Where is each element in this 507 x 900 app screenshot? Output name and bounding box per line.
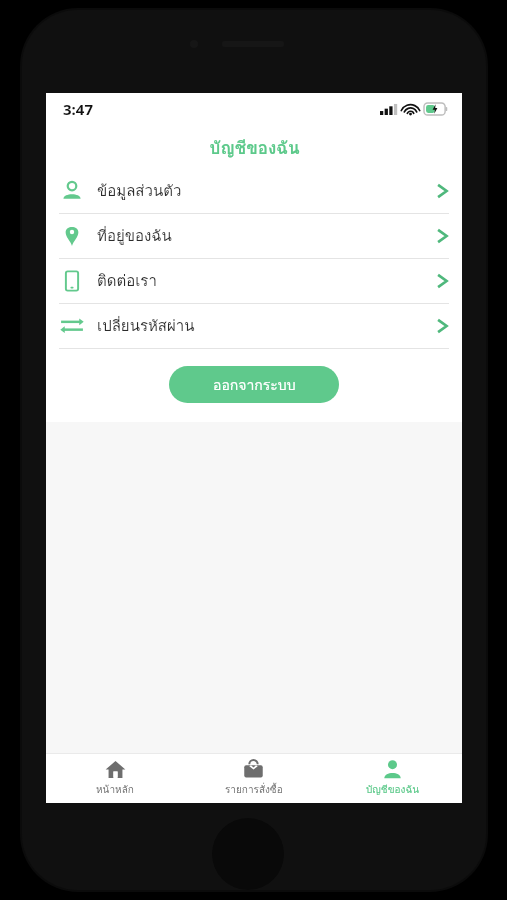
button[interactable]: ที่อยู่ของฉัน	[46, 214, 462, 258]
button[interactable]: Home	[46, 754, 184, 803]
staticText: ข้อมูลส่วนตัว	[97, 179, 437, 203]
staticText: เปลี่ยนรหัสผ่าน	[97, 314, 437, 338]
staticText: 3:47	[63, 99, 93, 119]
staticText: ออกจากระบบ	[213, 374, 296, 396]
button[interactable]: ติดต่อเรา	[46, 259, 462, 303]
staticText: รายการสั่งซื้อ	[225, 782, 283, 798]
staticText: ติดต่อเรา	[97, 269, 437, 293]
staticText: ที่อยู่ของฉัน	[97, 224, 437, 248]
button[interactable]: เปลี่ยนรหัสผ่าน	[46, 304, 462, 348]
button[interactable]: Orders	[184, 754, 323, 803]
staticText: บัญชีของฉัน	[209, 134, 300, 161]
button[interactable]: ออกจากระบบ	[169, 366, 339, 403]
button[interactable]: ข้อมูลส่วนตัว	[46, 169, 462, 213]
staticText: บัญชีของฉัน	[366, 782, 420, 798]
staticText: หน้าหลัก	[96, 782, 134, 798]
button[interactable]: My account	[323, 754, 462, 803]
